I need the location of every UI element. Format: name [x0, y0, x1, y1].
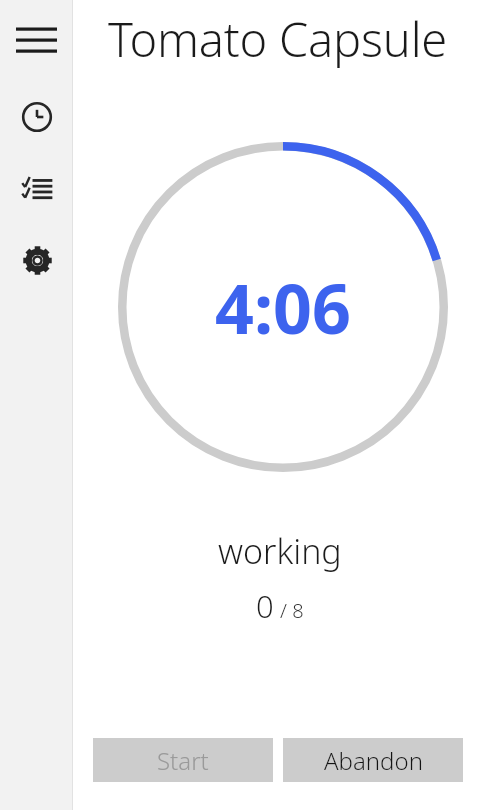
staticText: Abandon [324, 744, 423, 777]
staticText: 0 [256, 585, 274, 627]
button[interactable]: Abandon [283, 738, 463, 782]
button[interactable]: Timer [13, 93, 61, 141]
staticText: Start [157, 744, 209, 777]
button[interactable]: Settings [13, 236, 61, 284]
button[interactable]: Start [93, 738, 273, 782]
button[interactable]: Menu [8, 14, 66, 64]
staticText: 4:06 [215, 261, 351, 354]
button[interactable]: Tasks [13, 164, 61, 212]
staticText: working [218, 528, 342, 574]
staticText: Tomato Capsule [108, 7, 448, 71]
staticText: / 8 [280, 597, 304, 624]
